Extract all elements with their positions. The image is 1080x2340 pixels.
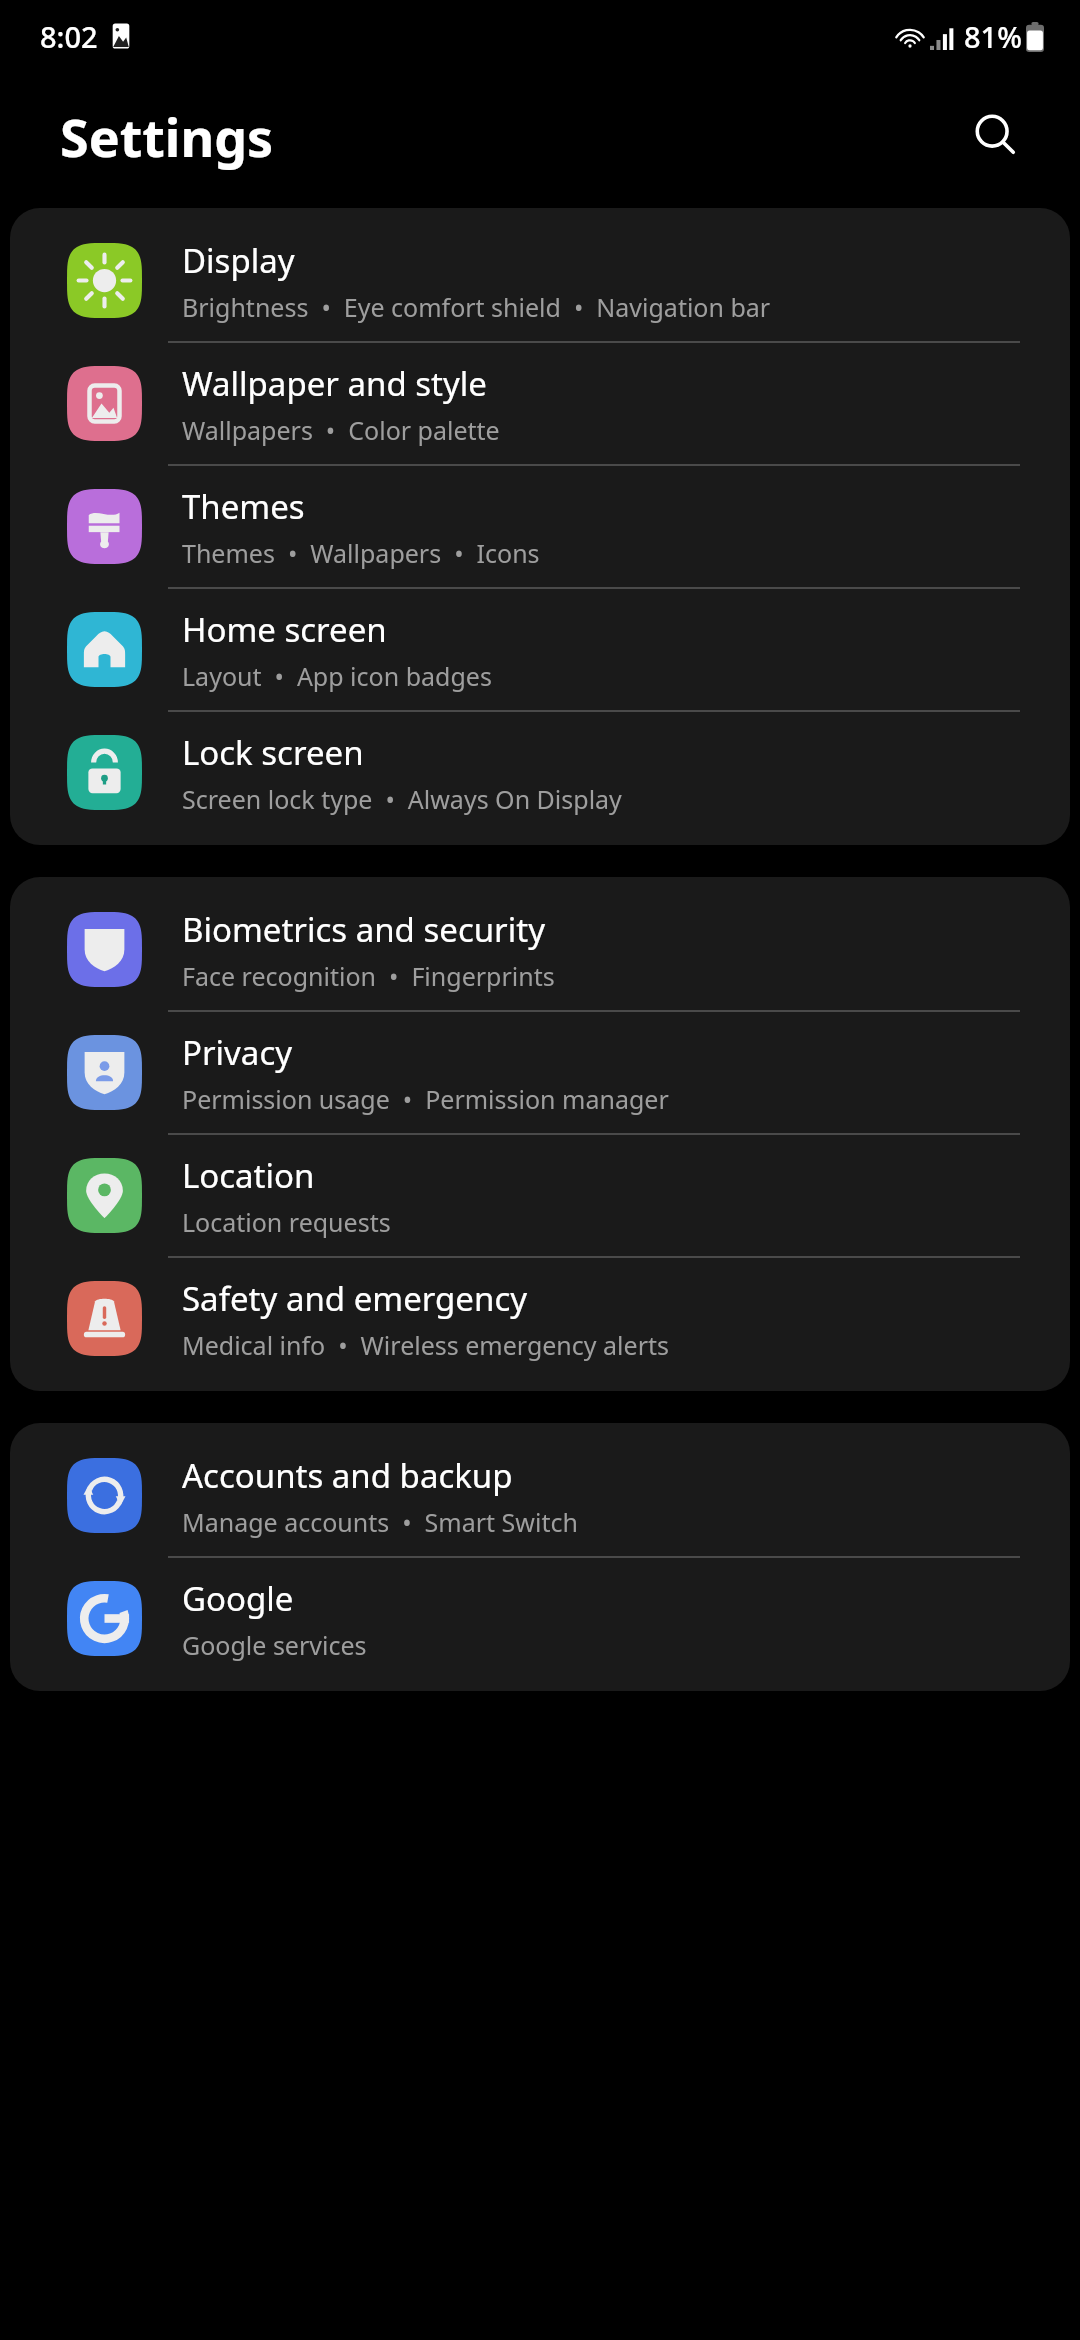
staticText: 81% [964,17,1022,56]
button[interactable]: Themes [10,466,1070,589]
button[interactable]: Biometrics and security [10,889,1070,1012]
staticText: Themes • Wallpapers • Icons [182,536,540,570]
staticText: Google services [182,1628,367,1662]
staticText: Accounts and backup [182,1453,513,1498]
button[interactable]: Home screen [10,589,1070,712]
staticText: Location [182,1153,315,1198]
button[interactable]: Wallpaper and style [10,343,1070,466]
staticText: 8:02 [40,17,98,56]
button[interactable]: Privacy [10,1012,1070,1135]
button[interactable]: Google [10,1558,1070,1679]
button[interactable]: Search [952,92,1040,180]
staticText: Wallpapers • Color palette [182,413,500,447]
staticText: Privacy [182,1030,293,1075]
button[interactable]: Display [10,220,1070,343]
staticText: Medical info • Wireless emergency alerts [182,1328,669,1362]
staticText: Screen lock type • Always On Display [182,782,622,816]
staticText: Location requests [182,1205,391,1239]
button[interactable]: Lock screen [10,712,1070,833]
staticText: Display [182,238,295,283]
staticText: Biometrics and security [182,907,545,952]
staticText: Wallpaper and style [182,361,487,406]
staticText: Google [182,1576,294,1621]
staticText: Safety and emergency [182,1276,528,1321]
staticText: Face recognition • Fingerprints [182,959,555,993]
staticText: Lock screen [182,730,364,775]
staticText: Settings [60,101,274,172]
staticText: Manage accounts • Smart Switch [182,1505,578,1539]
staticText: Themes [182,484,305,529]
button[interactable]: Accounts and backup [10,1435,1070,1558]
staticText: Layout • App icon badges [182,659,492,693]
button[interactable]: Location [10,1135,1070,1258]
staticText: Home screen [182,607,387,652]
staticText: Permission usage • Permission manager [182,1082,669,1116]
staticText: Brightness • Eye comfort shield • Naviga… [182,290,771,324]
button[interactable]: Safety and emergency [10,1258,1070,1379]
